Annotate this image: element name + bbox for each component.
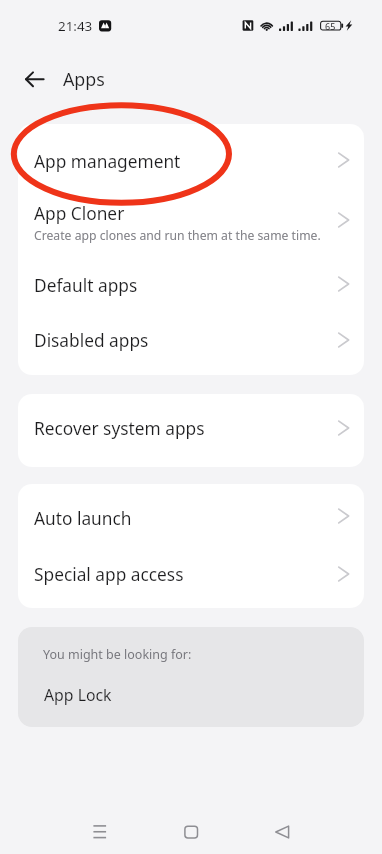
button[interactable]: Home [173,814,209,850]
staticText: 21:43 [58,17,93,35]
button[interactable]: Disabled apps [18,313,364,369]
staticText: App Cloner [34,202,125,226]
button[interactable]: You might be looking for: [18,627,364,727]
button[interactable]: App management [18,126,364,198]
staticText: Auto launch [34,507,132,531]
staticText: Special app access [34,563,184,587]
button[interactable]: Recent apps [82,814,118,850]
staticText: 65 [325,20,336,32]
staticText: App Lock [44,684,112,706]
button[interactable]: Default apps [18,258,364,314]
staticText: App management [34,150,181,174]
staticText: Create app clones and run them at the sa… [34,227,321,244]
button[interactable]: Auto launch [18,490,364,548]
staticText: Apps [63,67,105,91]
staticText: Recover system apps [34,417,205,441]
button[interactable]: Special app access [18,546,364,604]
staticText: Disabled apps [34,329,149,353]
button[interactable]: Back [264,814,300,850]
button[interactable]: Back [17,65,45,93]
staticText: Default apps [34,274,138,298]
button[interactable]: Recover system apps [18,399,364,459]
button[interactable]: App Cloner [18,196,364,250]
staticText: You might be looking for: [43,646,192,663]
